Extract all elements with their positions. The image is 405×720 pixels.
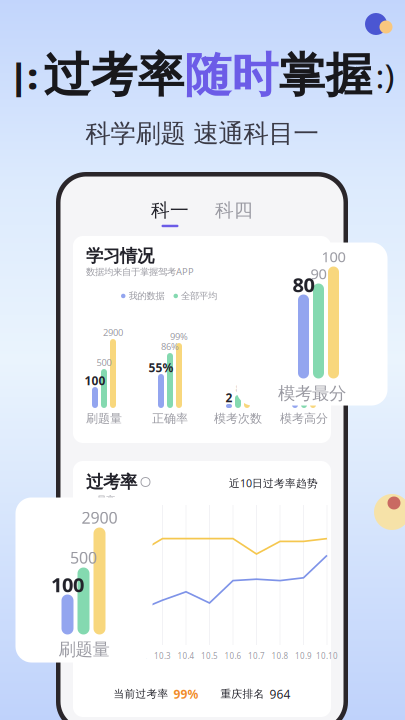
staticText: 80 xyxy=(292,271,314,298)
staticText: 55% xyxy=(148,359,173,375)
staticText: 10.8 xyxy=(271,651,288,661)
staticText: 500 xyxy=(96,356,111,369)
button[interactable]: 科四 xyxy=(215,199,253,227)
staticText: 8 xyxy=(235,382,240,395)
staticText: 99% xyxy=(173,686,198,702)
staticText: |: xyxy=(9,51,37,99)
staticText: 当前过考率 xyxy=(113,687,168,700)
staticText: 86% xyxy=(161,340,179,353)
staticText: 2900 xyxy=(103,326,123,339)
staticText: 模考次数 xyxy=(214,411,262,426)
staticText: 我的数据 xyxy=(128,290,164,302)
staticText: 近10日过考率趋势 xyxy=(229,476,318,490)
staticText: 学习情况 xyxy=(86,245,154,267)
staticText: 10.4 xyxy=(177,651,194,661)
staticText xyxy=(164,288,173,304)
button[interactable]: 科一 xyxy=(151,199,189,227)
staticText: 掌握 xyxy=(278,47,372,104)
staticText: 正确率 xyxy=(152,411,188,426)
staticText: :) xyxy=(375,53,394,98)
staticText: 100 xyxy=(305,331,320,344)
staticText: 100 xyxy=(321,247,345,266)
staticText: 10.9 xyxy=(295,651,312,661)
staticText: 科四 xyxy=(215,199,253,222)
staticText: 10.10 xyxy=(316,651,338,661)
staticText: 最高 xyxy=(97,494,115,506)
staticText: 10.3 xyxy=(154,651,171,661)
staticText: 2900 xyxy=(81,507,117,528)
staticText: 刷题量 xyxy=(86,411,122,426)
staticText: 模考最分 xyxy=(278,383,346,404)
staticText: 500 xyxy=(70,547,97,568)
staticText: 全部平均 xyxy=(181,290,217,302)
staticText: 100 xyxy=(51,571,84,598)
staticText: 10.6 xyxy=(224,651,241,661)
staticText: 重庆排名 xyxy=(220,687,264,700)
staticText: 科一 xyxy=(151,199,189,222)
staticText: 10.7 xyxy=(248,651,265,661)
staticText: 100 xyxy=(84,372,105,388)
staticText: 99% xyxy=(170,330,188,343)
staticText: 90 xyxy=(310,264,326,283)
staticText: 10.5 xyxy=(201,651,218,661)
staticText: 模考高分 xyxy=(280,411,328,426)
staticText: 过考率 xyxy=(43,47,184,104)
staticText: 随时 xyxy=(184,47,278,104)
staticText: 数据均来自于掌握驾考APP xyxy=(86,265,194,278)
staticText: 10.1 xyxy=(107,651,124,661)
staticText: 0% xyxy=(86,651,98,661)
staticText: 过考率 xyxy=(86,471,137,493)
staticText: 80 xyxy=(288,345,302,361)
staticText: 2 xyxy=(225,389,232,405)
staticText: 刷题量 xyxy=(58,639,109,660)
staticText: 964 xyxy=(269,686,290,702)
staticText: 科学刷题 速通科目一 xyxy=(85,118,318,149)
